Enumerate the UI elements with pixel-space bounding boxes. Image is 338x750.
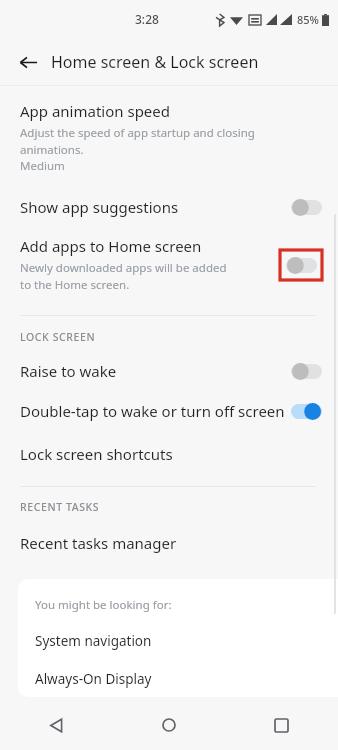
button[interactable]: On — [291, 404, 322, 419]
staticText: Add apps to Home screen — [20, 236, 202, 256]
button[interactable]: Double-tap to wake or turn off screen — [0, 396, 338, 426]
staticText: 3:28 — [135, 11, 159, 27]
staticText: Raise to wake — [20, 361, 117, 381]
button[interactable]: Lock screen shortcuts — [0, 437, 338, 471]
staticText: LOCK SCREEN — [20, 330, 96, 344]
button[interactable]: Back — [0, 700, 112, 750]
staticText: RECENT TASKS — [20, 500, 100, 514]
button[interactable]: Off — [291, 364, 322, 379]
staticText: Lock screen shortcuts — [20, 444, 173, 464]
staticText: Newly downloaded apps will be added to t… — [20, 260, 238, 293]
button[interactable]: Off — [286, 258, 317, 273]
button[interactable]: App animation speed — [0, 97, 338, 178]
button[interactable]: Off — [291, 200, 322, 215]
staticText: You might be looking for: — [35, 597, 172, 613]
button[interactable]: Raise to wake — [0, 356, 338, 386]
staticText: Recent tasks manager — [20, 533, 177, 553]
staticText: Show app suggestions — [20, 197, 179, 217]
staticText: Home screen & Lock screen — [51, 51, 259, 73]
staticText: Medium — [20, 158, 65, 174]
button[interactable]: Recents — [225, 700, 338, 750]
staticText: 85% — [297, 12, 319, 27]
staticText: App animation speed — [20, 101, 171, 121]
staticText: Double-tap to wake or turn off screen — [20, 401, 285, 421]
staticText: Always-On Display — [35, 670, 152, 688]
staticText: Adjust the speed of app startup and clos… — [20, 125, 318, 158]
button[interactable]: Always-On Display — [18, 667, 338, 691]
button[interactable]: Home — [112, 700, 225, 750]
button[interactable]: System navigation — [18, 629, 338, 653]
button[interactable]: Add apps to Home screen — [0, 231, 338, 298]
button[interactable]: Back — [10, 44, 46, 80]
button[interactable]: Show app suggestions — [0, 192, 338, 222]
staticText: System navigation — [35, 632, 152, 650]
button[interactable]: Recent tasks manager — [0, 527, 338, 559]
